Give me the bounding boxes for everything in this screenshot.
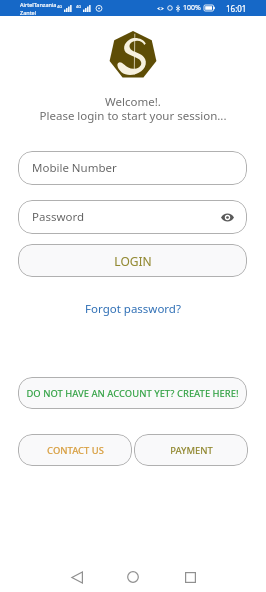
staticText: AirtelTanzania: [20, 1, 57, 8]
staticText: Please login to start your session...: [0, 108, 266, 124]
button[interactable]: CONTACT US: [18, 434, 132, 466]
button[interactable]: Mobile Number: [18, 151, 247, 185]
staticText: 100%: [183, 3, 201, 13]
button[interactable]: Back: [59, 565, 95, 589]
staticText: DO NOT HAVE AN ACCOUNT YET? CREATE HERE!: [26, 387, 239, 400]
staticText: Password: [32, 209, 85, 225]
staticText: Zantel: [20, 9, 37, 16]
button[interactable]: DO NOT HAVE AN ACCOUNT YET? CREATE HERE!: [18, 377, 247, 409]
staticText: PAYMENT: [170, 444, 213, 457]
button[interactable]: Recents: [172, 565, 208, 589]
staticText: 4G: [76, 4, 82, 9]
staticText: Mobile Number: [32, 160, 117, 176]
button[interactable]: Home: [115, 565, 151, 589]
button[interactable]: Forgot password?: [0, 301, 266, 317]
staticText: 16:01: [226, 3, 247, 14]
staticText: LOGIN: [114, 253, 152, 269]
staticText: Welcome!.: [0, 94, 266, 110]
button[interactable]: Show password: [218, 208, 236, 226]
button[interactable]: LOGIN: [18, 244, 247, 277]
staticText: CONTACT US: [47, 444, 104, 457]
button[interactable]: Password: [18, 200, 247, 234]
button[interactable]: PAYMENT: [134, 434, 248, 466]
staticText: 4G: [57, 4, 63, 9]
